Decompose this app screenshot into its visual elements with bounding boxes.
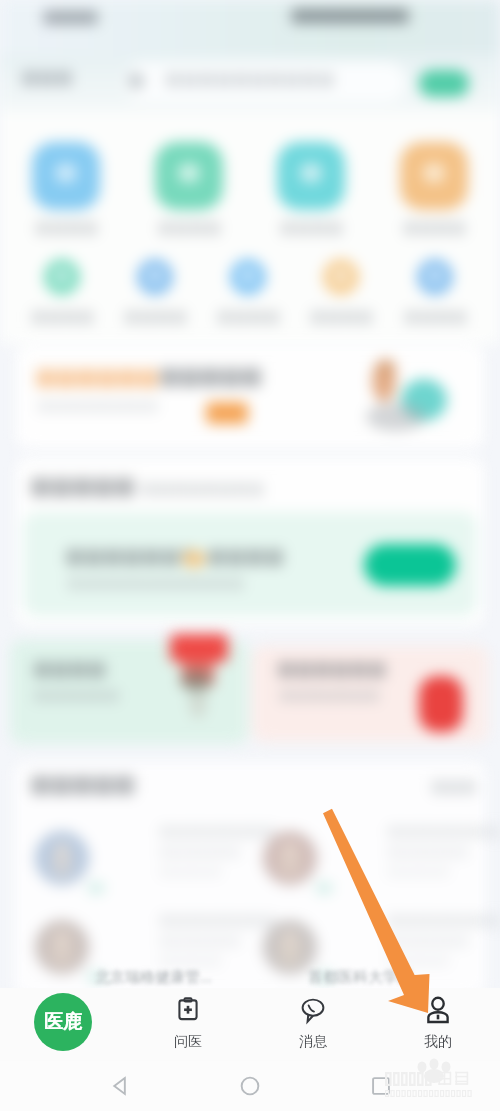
button[interactable]: Back	[109, 1075, 131, 1097]
button[interactable]: 问医	[125, 988, 250, 1061]
staticText: 问医	[174, 1033, 202, 1051]
staticText: 医鹿	[44, 1010, 82, 1034]
button[interactable]: 我的	[375, 988, 500, 1061]
staticText: 消息	[299, 1033, 327, 1051]
button[interactable]: 消息	[250, 988, 375, 1061]
staticText: 首都医科大学附…	[308, 966, 425, 986]
staticText: 北京瑞格健康管…	[95, 966, 212, 986]
button[interactable]: 医鹿 首页	[0, 988, 125, 1061]
button[interactable]: Home	[239, 1075, 261, 1097]
button[interactable]: Recent apps	[370, 1075, 392, 1097]
staticText: 我的	[424, 1033, 452, 1051]
